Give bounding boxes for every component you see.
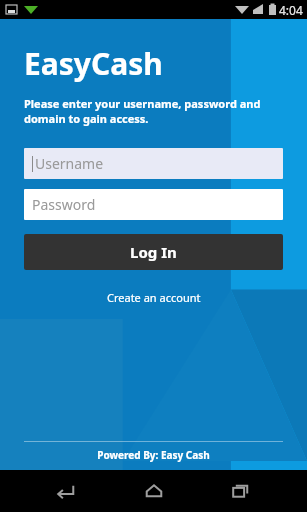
staticText: Password: [32, 195, 96, 214]
staticText: 4:04: [279, 2, 303, 18]
button[interactable]: Password: [24, 189, 283, 220]
staticText: Create an account: [107, 290, 201, 305]
button[interactable]: Log In: [24, 234, 283, 270]
staticText: EasyCash: [24, 43, 163, 84]
button[interactable]: Create an account: [24, 290, 283, 305]
button[interactable]: Username: [24, 148, 283, 179]
staticText: Username: [35, 154, 104, 173]
button[interactable]: Recents: [219, 470, 263, 512]
staticText: Please enter your username, password and…: [24, 96, 283, 126]
staticText: Log In: [130, 242, 177, 262]
staticText: Powered By: Easy Cash: [24, 448, 283, 462]
button[interactable]: Home: [132, 470, 176, 512]
button[interactable]: Back: [44, 470, 88, 512]
